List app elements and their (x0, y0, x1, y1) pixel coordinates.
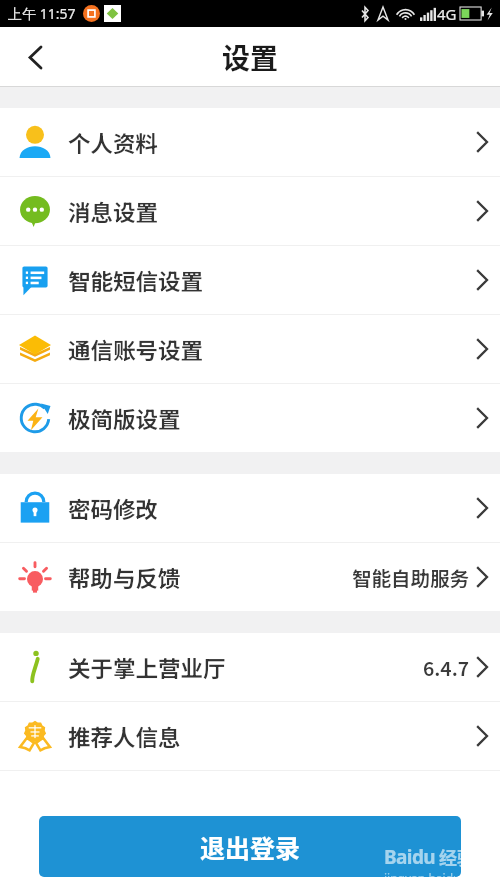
staticText: 4G (437, 4, 457, 24)
staticText: 设置 (222, 37, 279, 78)
button[interactable]: 退出登录 (39, 816, 461, 877)
button[interactable]: 密码修改 (0, 474, 500, 542)
staticText: 消息设置 (68, 195, 159, 228)
staticText: 密码修改 (68, 492, 159, 525)
staticText: 智能短信设置 (68, 264, 204, 297)
button[interactable]: Back (6, 28, 64, 86)
button[interactable]: 推荐人信息 (0, 702, 500, 770)
button[interactable]: 消息设置 (0, 177, 500, 245)
staticText: Baidu (384, 844, 436, 870)
staticText: 通信账号设置 (68, 333, 204, 366)
button[interactable]: 智能短信设置 (0, 246, 500, 314)
staticText: 关于掌上营业厅 (68, 651, 226, 684)
button[interactable]: 个人资料 (0, 108, 500, 176)
staticText: 智能自助服务 (352, 563, 470, 591)
button[interactable]: 帮助与反馈 (0, 543, 500, 611)
staticText: 上午 11:57 (8, 4, 76, 23)
staticText: 6.4.7 (423, 653, 470, 681)
staticText: 退出登录 (200, 829, 301, 865)
button[interactable]: 关于掌上营业厅 (0, 633, 500, 701)
staticText: 推荐人信息 (68, 720, 181, 753)
staticText: 帮助与反馈 (68, 561, 181, 594)
staticText: 个人资料 (68, 126, 159, 159)
staticText: 极简版设置 (68, 402, 181, 435)
button[interactable]: 通信账号设置 (0, 315, 500, 383)
staticText: jingyan.baidu.com (384, 870, 488, 886)
staticText: 经验 (439, 844, 475, 870)
button[interactable]: 极简版设置 (0, 384, 500, 452)
